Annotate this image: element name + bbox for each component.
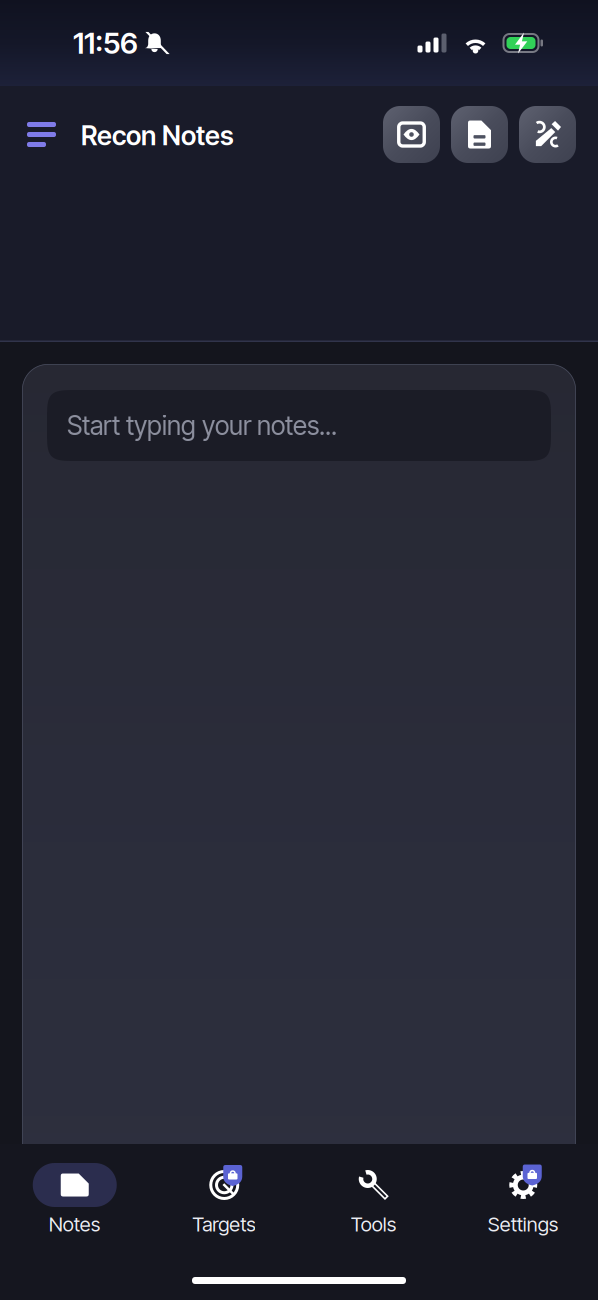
button[interactable]: Notes: [0, 1163, 149, 1236]
button[interactable]: Targets: [149, 1163, 299, 1236]
button[interactable]: Edit: [519, 106, 576, 163]
button[interactable]: Menu: [27, 106, 59, 163]
staticText: Settings: [488, 1212, 559, 1236]
staticText: Tools: [351, 1212, 397, 1236]
button[interactable]: Preview: [383, 106, 440, 163]
staticText: Notes: [49, 1212, 101, 1236]
staticText: Recon Notes: [81, 119, 234, 152]
staticText: Targets: [192, 1212, 256, 1236]
staticText: Start typing your notes...: [67, 410, 337, 441]
staticText: 11:56: [73, 25, 138, 61]
button[interactable]: Tools: [299, 1163, 448, 1236]
button[interactable]: Document: [451, 106, 508, 163]
button[interactable]: Settings: [448, 1163, 598, 1236]
